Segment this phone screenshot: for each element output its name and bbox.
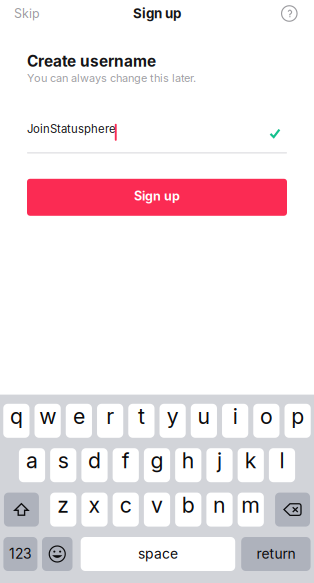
staticText: Sign up [134,188,180,204]
staticText: m [241,492,260,518]
button[interactable]: 123 [3,537,37,571]
button[interactable]: m [238,493,264,527]
button[interactable]: e [66,404,92,438]
button[interactable]: y [159,404,186,438]
staticText: return [256,545,295,562]
staticText: l [279,448,284,473]
button[interactable]: d [81,448,108,482]
staticText: c [120,492,132,518]
staticText: o [260,403,273,429]
button[interactable]: q [3,404,29,438]
staticText: d [88,448,101,473]
staticText: b [182,492,195,518]
staticText: Create username [27,52,156,71]
button[interactable]: Shift [4,493,39,527]
button[interactable]: p [284,404,311,438]
button[interactable]: Emoji [42,537,72,571]
button[interactable]: j [206,448,233,482]
button[interactable]: s [50,448,76,482]
button[interactable]: g [144,448,170,482]
button[interactable]: n [206,493,233,527]
staticText: w [39,403,56,429]
button[interactable]: v [144,493,170,527]
button[interactable]: b [175,493,201,527]
button[interactable]: i [222,404,248,438]
staticText: a [26,448,38,473]
button[interactable]: c [113,493,139,527]
staticText: j [217,448,222,473]
button[interactable]: l [269,448,295,482]
button[interactable]: f [113,448,139,482]
button[interactable]: Sign up [27,179,287,216]
staticText: Sign up [133,5,181,21]
staticText: t [138,403,145,429]
button[interactable]: Delete [275,493,310,527]
staticText: e [73,403,85,429]
staticText: f [122,448,130,473]
button[interactable]: space [81,537,235,571]
staticText: k [245,448,257,473]
button[interactable]: Skip [12,2,42,25]
staticText: u [197,403,210,429]
button[interactable]: w [34,404,61,438]
button[interactable]: r [97,404,123,438]
staticText: x [88,492,100,518]
staticText: space [138,545,178,562]
button[interactable]: o [253,404,279,438]
staticText: You can always change this later. [27,71,196,85]
staticText: g [150,448,163,473]
staticText: r [106,403,114,429]
staticText: y [167,403,179,429]
staticText: s [58,448,69,473]
staticText: n [213,492,226,518]
staticText: i [233,403,238,429]
button[interactable]: u [191,404,217,438]
staticText: q [10,403,23,429]
button[interactable]: Help [277,1,301,25]
staticText: h [182,448,195,473]
staticText: z [57,492,69,518]
staticText: v [151,492,163,518]
button[interactable]: h [175,448,201,482]
button[interactable]: return [241,537,311,571]
button[interactable]: x [81,493,108,527]
staticText: p [291,403,304,429]
staticText: JoinStatusphere [27,122,116,136]
staticText: Skip [14,6,40,21]
button[interactable]: a [19,448,45,482]
staticText: 123 [9,545,32,562]
button[interactable]: k [238,448,264,482]
button[interactable]: z [50,493,76,527]
button[interactable]: t [128,404,154,438]
